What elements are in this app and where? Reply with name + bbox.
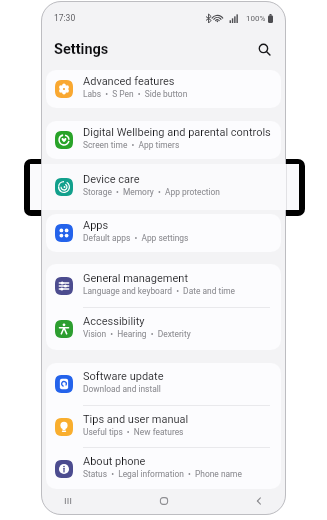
staticText: Status • Legal information • Phone name	[83, 469, 242, 479]
button[interactable]: Advanced features	[46, 70, 281, 108]
button[interactable]: About phone	[46, 448, 281, 489]
button[interactable]: Device care	[46, 164, 281, 202]
staticText: Download and install	[83, 384, 161, 394]
button[interactable]: Search	[253, 38, 275, 60]
staticText: Apps	[83, 219, 109, 232]
staticText: Device care	[83, 173, 140, 186]
button[interactable]: Device care	[46, 164, 281, 210]
staticText: 17:30	[54, 13, 76, 23]
staticText: Tips and user manual	[83, 413, 189, 426]
staticText: Screen time • App timers	[83, 140, 180, 150]
staticText: General management	[83, 272, 188, 285]
button[interactable]: Tips and user manual	[46, 406, 281, 447]
staticText: Useful tips • New features	[83, 427, 184, 437]
staticText: Advanced features	[83, 75, 175, 88]
staticText: Vision • Hearing • Dexterity	[83, 329, 191, 339]
staticText: Software update	[83, 370, 164, 383]
button[interactable]: Accessibility	[46, 308, 281, 350]
button[interactable]: Digital Wellbeing and parental controls	[46, 121, 281, 159]
staticText: Device care	[83, 169, 140, 182]
button[interactable]: Home	[149, 487, 179, 515]
staticText: Language and keyboard • Date and time	[83, 286, 236, 296]
button[interactable]: General management	[46, 264, 281, 307]
staticText: Default apps • App settings	[83, 233, 189, 243]
staticText: Accessibility	[83, 315, 145, 328]
staticText: Storage • Memory • App protection	[83, 183, 220, 193]
staticText: Digital Wellbeing and parental controls	[83, 126, 271, 139]
staticText: Storage • Memory • App protection	[83, 187, 220, 197]
button[interactable]: Software update	[46, 363, 281, 405]
staticText: Labs • S Pen • Side button	[83, 89, 188, 99]
button[interactable]: Recents	[53, 487, 83, 515]
button[interactable]: Back	[244, 487, 274, 515]
staticText: Settings	[54, 41, 109, 58]
button[interactable]: Apps	[46, 214, 281, 252]
staticText: About phone	[83, 455, 146, 468]
staticText: 100%	[246, 14, 266, 23]
